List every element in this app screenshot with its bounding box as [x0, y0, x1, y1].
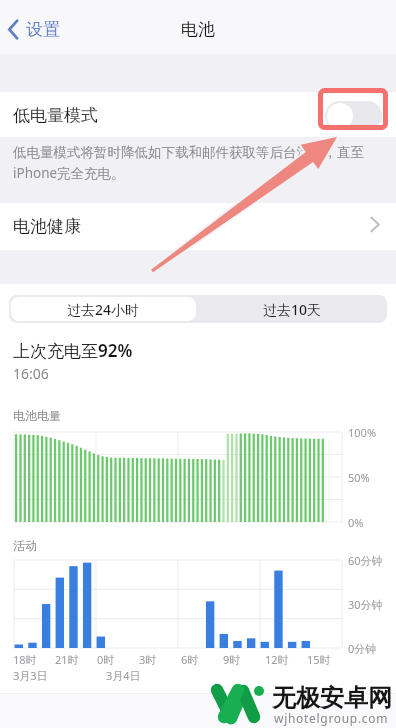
- staticText: 12时: [265, 652, 289, 667]
- staticText: 上次充电至92%: [13, 339, 133, 362]
- button[interactable]: 过去10天: [198, 295, 387, 323]
- staticText: 0分钟: [348, 641, 377, 656]
- button[interactable]: 低电量模式: [0, 92, 396, 137]
- button[interactable]: 电池健康: [0, 203, 396, 250]
- staticText: 6时: [181, 652, 199, 667]
- staticText: 3月4日: [106, 668, 141, 683]
- staticText: 电池健康: [13, 216, 81, 237]
- staticText: 18时: [13, 652, 37, 667]
- staticText: 50%: [348, 470, 370, 485]
- button[interactable]: 过去24小时: [11, 297, 196, 321]
- staticText: 活动: [13, 538, 37, 553]
- staticText: 0%: [348, 515, 364, 530]
- staticText: 无极安卓网: [272, 683, 392, 713]
- staticText: 9时: [223, 652, 241, 667]
- staticText: 电池电量: [13, 408, 61, 423]
- staticText: 低电量模式: [13, 105, 98, 126]
- staticText: 电池: [181, 19, 215, 40]
- staticText: 3月3日: [13, 668, 48, 683]
- staticText: 30分钟: [348, 597, 383, 612]
- staticText: 过去10天: [263, 300, 322, 319]
- staticText: 3时: [139, 652, 157, 667]
- staticText: 21时: [55, 652, 79, 667]
- staticText: 0时: [97, 652, 115, 667]
- staticText: 过去24小时: [67, 300, 140, 319]
- button[interactable]: 设置: [6, 19, 60, 40]
- staticText: 16:06: [13, 364, 49, 383]
- staticText: 15时: [307, 652, 331, 667]
- staticText: 低电量模式将暂时降低如下载和邮件获取等后台活动，直至 iPhone完全充电。: [13, 144, 364, 182]
- staticText: 设置: [26, 19, 60, 40]
- staticText: wjhotelgroup.com: [274, 710, 389, 726]
- staticText: 100%: [348, 425, 377, 440]
- staticText: 60分钟: [348, 553, 383, 568]
- button[interactable]: Low Power Mode toggle: [325, 101, 382, 130]
